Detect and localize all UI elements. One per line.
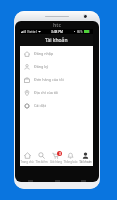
button[interactable]: Thông báo: [63, 146, 78, 166]
staticText: Tài khoản: [45, 37, 68, 44]
button[interactable]: Tìm kiếm: [34, 146, 48, 166]
staticText: Tìm kiếm: [35, 160, 48, 164]
button[interactable]: Đăng ký: [20, 60, 93, 73]
button[interactable]: Địa chỉ của tôi: [20, 86, 93, 99]
button[interactable]: Đơn hàng của tôi: [20, 73, 93, 86]
staticText: htc: [53, 22, 62, 29]
button[interactable]: 3: [48, 146, 63, 166]
staticText: 86%: [77, 30, 83, 34]
staticText: Địa chỉ của tôi: [34, 90, 59, 95]
staticText: Viettel: [27, 30, 37, 34]
button[interactable]: Đăng nhập: [20, 47, 93, 60]
staticText: Đăng nhập: [34, 51, 54, 56]
button[interactable]: Cài đặt: [20, 99, 93, 112]
staticText: Đăng ký: [34, 64, 49, 69]
button[interactable]: Tài khoản: [78, 146, 93, 166]
staticText: 3:38 PM: [51, 30, 63, 34]
staticText: 3: [59, 152, 61, 156]
staticText: Cài đặt: [34, 103, 46, 108]
staticText: Tài khoản: [79, 160, 92, 164]
staticText: Giỏ hàng: [50, 160, 62, 164]
staticText: Thông báo: [63, 160, 78, 164]
button[interactable]: Trang chủ: [20, 146, 34, 166]
staticText: Trang chủ: [20, 160, 34, 164]
staticText: Đơn hàng của tôi: [34, 77, 64, 82]
